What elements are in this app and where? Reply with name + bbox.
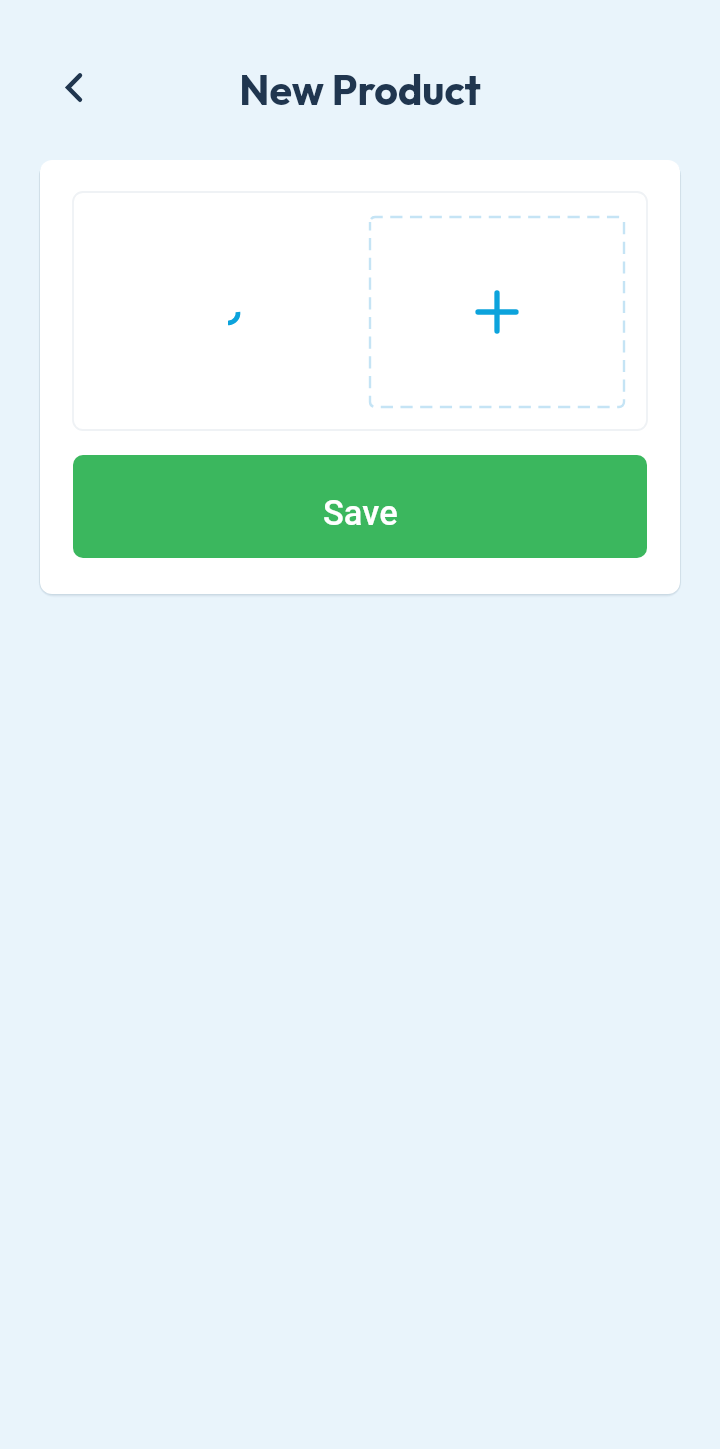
staticText: Save (323, 493, 398, 533)
button[interactable]: Add image (370, 217, 624, 407)
staticText: New Product (239, 64, 481, 116)
button[interactable]: Save (73, 455, 647, 558)
button[interactable]: Back (44, 58, 104, 118)
